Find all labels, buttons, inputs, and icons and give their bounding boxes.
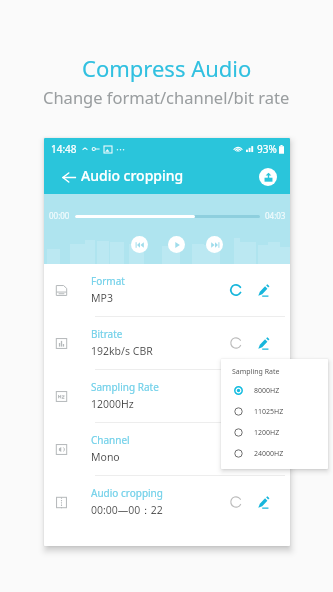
button[interactable]: Channel xyxy=(44,423,290,475)
button[interactable]: Format xyxy=(44,264,290,316)
staticText: Audio cropping xyxy=(91,486,163,500)
staticText: 14:48 xyxy=(51,142,77,156)
button[interactable]: Play xyxy=(168,236,185,253)
button[interactable]: Edit xyxy=(253,386,273,406)
staticText: 11025HZ xyxy=(254,407,284,417)
button[interactable]: Reset xyxy=(226,492,246,512)
button[interactable]: Edit xyxy=(253,333,273,353)
button[interactable]: Edit xyxy=(253,280,273,300)
button[interactable]: Reset xyxy=(226,280,246,300)
staticText: Change format/channel/bit rate xyxy=(43,86,290,108)
staticText: 192kb/s CBR xyxy=(91,344,153,358)
button[interactable]: 24000HZ xyxy=(221,443,328,464)
staticText: Format xyxy=(91,274,125,288)
staticText: 04:03 xyxy=(265,210,286,221)
staticText: 24000HZ xyxy=(254,449,284,459)
staticText: 12000Hz xyxy=(91,397,134,411)
staticText: Bitrate xyxy=(91,327,123,341)
button[interactable]: Back xyxy=(57,165,81,189)
staticText: Compress Audio xyxy=(82,53,252,83)
button[interactable]: 8000HZ xyxy=(221,380,328,401)
button[interactable]: Edit xyxy=(253,492,273,512)
button[interactable]: Edit xyxy=(253,439,273,459)
staticText: Sampling Rate xyxy=(232,367,280,377)
staticText: Audio cropping xyxy=(81,166,184,185)
button[interactable]: Bitrate xyxy=(44,317,290,369)
staticText: Mono xyxy=(91,450,120,464)
staticText: 00:00 xyxy=(49,210,70,221)
button[interactable]: Sampling Rate xyxy=(44,370,290,422)
button[interactable]: 11025HZ xyxy=(221,401,328,422)
staticText: Sampling Rate xyxy=(91,380,159,394)
staticText: 1200HZ xyxy=(254,428,280,438)
button[interactable]: Next xyxy=(206,236,223,253)
staticText: MP3 xyxy=(91,291,113,305)
button[interactable]: Previous xyxy=(131,236,148,253)
staticText: 8000HZ xyxy=(254,386,280,396)
button[interactable]: Reset xyxy=(226,333,246,353)
button[interactable]: Reset xyxy=(226,386,246,406)
button[interactable]: Reset xyxy=(226,439,246,459)
button[interactable]: Save xyxy=(259,168,277,186)
staticText: 00:00—00：22 xyxy=(91,503,163,517)
staticText: 93% xyxy=(257,142,277,156)
button[interactable]: 1200HZ xyxy=(221,422,328,443)
staticText: Channel xyxy=(91,433,130,447)
button[interactable]: Audio cropping xyxy=(44,476,290,528)
